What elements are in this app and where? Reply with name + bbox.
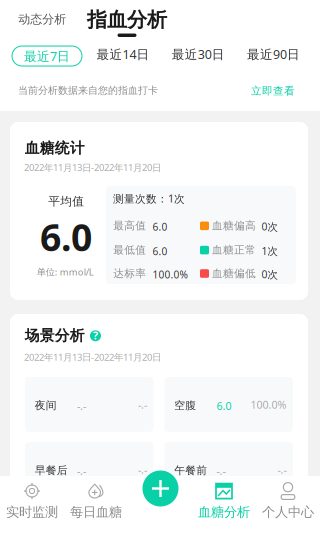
- staticText: 达标率: [113, 267, 146, 280]
- staticText: 0次: [261, 267, 277, 281]
- button[interactable]: 个人中心: [256, 476, 320, 525]
- button[interactable]: 指血分析: [87, 7, 167, 37]
- button[interactable]: 血糖分析: [192, 476, 256, 525]
- staticText: 立即查看: [251, 84, 295, 98]
- staticText: 血糖统计: [25, 139, 85, 157]
- button[interactable]: 添加记录: [142, 470, 178, 506]
- staticText: 实时监测: [6, 504, 58, 520]
- staticText: 100.0%: [250, 397, 286, 412]
- staticText: 动态分析: [18, 12, 66, 27]
- staticText: -.-: [77, 398, 86, 413]
- staticText: 最近7日: [24, 47, 70, 65]
- staticText: 血糖偏高: [212, 219, 256, 232]
- staticText: 最近30日: [172, 46, 225, 63]
- staticText: 当前分析数据来自您的指血打卡: [18, 84, 158, 97]
- staticText: 血糖分析: [198, 504, 250, 520]
- staticText: 个人中心: [262, 504, 314, 520]
- button[interactable]: 最近7日: [12, 46, 82, 66]
- staticText: 血糖偏低: [212, 267, 256, 280]
- button[interactable]: 最近30日: [168, 42, 229, 67]
- staticText: 6.0: [153, 244, 168, 258]
- button[interactable]: 动态分析: [13, 8, 71, 31]
- staticText: -.-: [216, 463, 225, 478]
- staticText: 2022年11月13日-2022年11月20日: [24, 161, 161, 174]
- button[interactable]: 立即查看: [247, 80, 299, 102]
- staticText: 0次: [261, 219, 277, 234]
- button[interactable]: 午餐前: [164, 442, 293, 497]
- staticText: ?: [93, 328, 98, 342]
- staticText: 6.0: [40, 211, 92, 262]
- button[interactable]: 夜间: [25, 377, 153, 432]
- staticText: 测量次数：1次: [113, 191, 185, 206]
- button[interactable]: 最近90日: [243, 42, 304, 67]
- button[interactable]: 说明: [90, 330, 101, 341]
- staticText: 场景分析: [25, 326, 85, 345]
- button[interactable]: 最近14日: [92, 42, 153, 67]
- staticText: -.-: [138, 462, 147, 477]
- staticText: 1次: [261, 244, 277, 258]
- staticText: 2022年11月13日-2022年11月20日: [24, 351, 161, 363]
- staticText: 最近14日: [96, 46, 149, 63]
- staticText: 100.0%: [153, 268, 188, 281]
- staticText: 单位: mmol/L: [37, 265, 94, 278]
- staticText: 每日血糖: [70, 504, 122, 520]
- staticText: 平均值: [48, 194, 84, 209]
- staticText: 空腹: [174, 398, 196, 412]
- staticText: 6.0: [153, 220, 168, 234]
- staticText: 早餐后: [35, 463, 68, 477]
- staticText: 最近90日: [247, 46, 300, 63]
- button[interactable]: 每日血糖: [64, 476, 128, 525]
- button[interactable]: 早餐后: [25, 442, 153, 497]
- staticText: 午餐前: [174, 463, 207, 477]
- staticText: -.-: [277, 462, 286, 477]
- staticText: 夜间: [35, 398, 57, 412]
- staticText: -.-: [77, 463, 86, 478]
- staticText: 最高值: [113, 219, 146, 232]
- staticText: 最低值: [113, 243, 146, 257]
- button[interactable]: 实时监测: [0, 476, 64, 525]
- staticText: 6.0: [216, 398, 231, 413]
- staticText: 血糖正常: [212, 243, 256, 257]
- button[interactable]: 空腹: [164, 377, 293, 432]
- staticText: 指血分析: [87, 7, 167, 32]
- staticText: -.-: [138, 397, 147, 412]
